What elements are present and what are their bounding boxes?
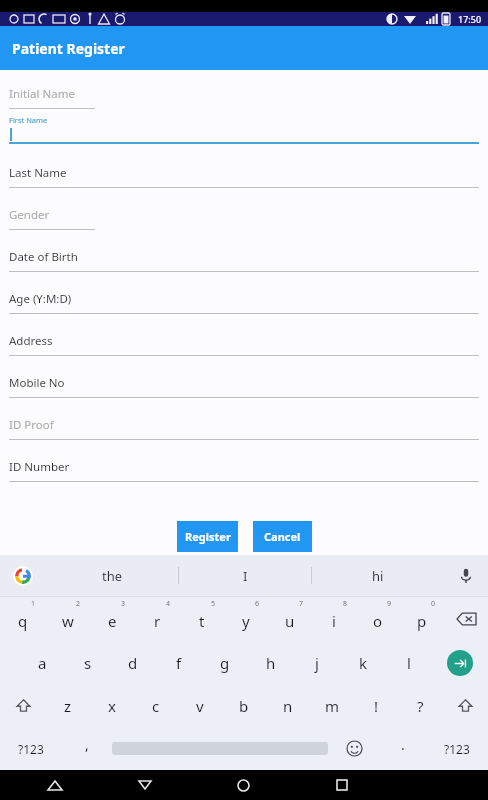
staticText: 1 <box>31 599 36 609</box>
staticText: Address <box>9 333 53 349</box>
button[interactable]: Up <box>38 770 72 800</box>
button[interactable]: Mobile No <box>9 356 479 398</box>
staticText: 17:50 <box>458 13 482 25</box>
button[interactable]: Voice input <box>444 555 488 596</box>
staticText: ! <box>374 696 379 716</box>
button[interactable]: 2 <box>45 597 90 641</box>
button[interactable]: the <box>46 555 178 596</box>
button[interactable]: ?123 <box>426 727 488 770</box>
staticText: o <box>373 611 383 631</box>
staticText: e <box>108 611 117 631</box>
button[interactable]: Recent apps <box>325 770 359 800</box>
staticText: 3 <box>121 599 126 609</box>
button[interactable]: 8 <box>312 597 356 641</box>
staticText: ID Number <box>9 459 70 475</box>
button[interactable]: First Name <box>9 109 479 144</box>
staticText: Mobile No <box>9 375 65 391</box>
staticText: x <box>108 696 116 716</box>
button[interactable]: ID Proof <box>9 398 479 440</box>
button[interactable]: Google <box>0 555 46 596</box>
button[interactable]: 5 <box>180 597 224 641</box>
staticText: ?123 <box>444 741 470 757</box>
staticText: ?123 <box>18 741 44 757</box>
button[interactable]: 4 <box>135 597 180 641</box>
staticText: 9 <box>387 599 392 609</box>
button[interactable]: Shift <box>0 684 46 727</box>
staticText: 4 <box>166 599 171 609</box>
staticText: Age (Y:M:D) <box>9 291 72 307</box>
staticText: h <box>266 653 276 673</box>
button[interactable]: a <box>20 641 65 684</box>
button[interactable]: 6 <box>224 597 268 641</box>
staticText: 2 <box>76 599 81 609</box>
button[interactable]: ? <box>398 684 442 727</box>
staticText: n <box>283 696 293 716</box>
button[interactable]: s <box>65 641 110 684</box>
button[interactable]: Initial Name <box>9 70 479 109</box>
button[interactable]: Backspace <box>444 597 488 641</box>
staticText: g <box>220 653 230 673</box>
staticText: v <box>196 696 204 716</box>
button[interactable]: hi <box>312 555 444 596</box>
staticText: w <box>62 611 74 631</box>
button[interactable]: Gender <box>9 188 479 230</box>
staticText: 7 <box>299 599 304 609</box>
staticText: 6 <box>255 599 260 609</box>
button[interactable]: Cancel <box>253 521 312 552</box>
button[interactable]: 9 <box>356 597 400 641</box>
button[interactable]: 3 <box>90 597 135 641</box>
button[interactable]: 7 <box>268 597 312 641</box>
button[interactable]: ID Number <box>9 440 479 482</box>
button[interactable]: Space <box>112 727 328 770</box>
button[interactable]: 0 <box>400 597 444 641</box>
button[interactable]: Date of Birth <box>9 230 479 272</box>
button[interactable]: 1 <box>0 597 45 641</box>
button[interactable]: Address <box>9 314 479 356</box>
button[interactable]: Back <box>128 770 162 800</box>
button[interactable]: g <box>202 641 248 684</box>
button[interactable]: I <box>179 555 311 596</box>
staticText: k <box>359 653 368 673</box>
button[interactable]: Emoji <box>328 727 380 770</box>
button[interactable]: Shift right <box>442 684 488 727</box>
staticText: u <box>285 611 295 631</box>
button[interactable]: Age (Y:M:D) <box>9 272 479 314</box>
staticText: j <box>315 653 319 673</box>
staticText: m <box>325 696 340 716</box>
staticText: c <box>152 696 160 716</box>
button[interactable]: j <box>294 641 340 684</box>
button[interactable]: Register <box>177 521 238 552</box>
button[interactable]: Home <box>226 770 260 800</box>
staticText: Register <box>185 529 231 544</box>
button[interactable]: x <box>90 684 134 727</box>
button[interactable]: Patient Register <box>0 26 488 70</box>
button[interactable]: c <box>134 684 178 727</box>
button[interactable]: m <box>310 684 354 727</box>
staticText: i <box>332 611 336 631</box>
button[interactable]: Next <box>432 641 488 684</box>
button[interactable]: f <box>156 641 202 684</box>
button[interactable]: k <box>340 641 386 684</box>
staticText: , <box>85 735 89 754</box>
button[interactable]: Last Name <box>9 144 479 188</box>
button[interactable]: . <box>380 727 426 770</box>
staticText: 5 <box>211 599 216 609</box>
button[interactable]: d <box>110 641 156 684</box>
staticText: b <box>239 696 249 716</box>
staticText: Date of Birth <box>9 249 78 265</box>
staticText: I <box>243 567 248 585</box>
button[interactable]: v <box>178 684 222 727</box>
button[interactable]: n <box>266 684 310 727</box>
button[interactable]: h <box>248 641 294 684</box>
staticText: 8 <box>343 599 348 609</box>
button[interactable]: , <box>62 727 112 770</box>
button[interactable]: l <box>386 641 432 684</box>
button[interactable]: ! <box>354 684 398 727</box>
staticText: ? <box>417 696 424 716</box>
staticText: the <box>102 567 123 585</box>
staticText: y <box>242 611 250 631</box>
staticText: t <box>199 611 205 631</box>
button[interactable]: ?123 <box>0 727 62 770</box>
button[interactable]: z <box>46 684 90 727</box>
button[interactable]: b <box>222 684 266 727</box>
